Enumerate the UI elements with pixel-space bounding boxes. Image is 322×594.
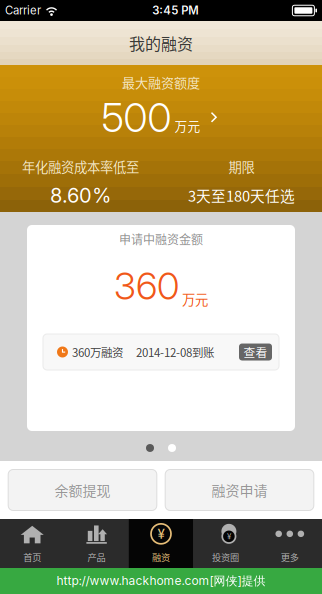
staticText: 2014-12-08到账 [136, 344, 214, 360]
staticText: 3天至180天任选 [188, 185, 295, 206]
button[interactable]: 查看 [239, 343, 272, 360]
staticText: 万元 [174, 116, 200, 135]
button[interactable]: 余额提现 [8, 469, 157, 510]
button[interactable]: 融资申请 [165, 469, 314, 510]
staticText: 余额提现 [54, 480, 110, 500]
staticText: 期限 [228, 157, 254, 176]
staticText: 融资 [152, 550, 170, 564]
staticText: 产品 [88, 550, 106, 564]
button[interactable]: ¥ [129, 519, 193, 568]
staticText: Carrier [5, 4, 41, 17]
staticText: 3:45 PM [152, 4, 198, 17]
staticText: 申请中融资金额 [119, 230, 203, 248]
staticText: 投资圈 [212, 550, 239, 564]
staticText: 最大融资额度 [122, 72, 200, 91]
staticText: 500 [101, 93, 171, 142]
staticText: 融资申请 [211, 480, 267, 500]
button[interactable]: 产品 [64, 519, 129, 568]
button[interactable]: 更多 [258, 519, 322, 568]
button[interactable]: ¥ [193, 519, 258, 568]
staticText: 更多 [281, 550, 299, 564]
staticText: ¥ [227, 531, 231, 541]
staticText: 首页 [23, 550, 41, 564]
staticText: 我的融资 [129, 31, 193, 55]
staticText: http://www.hackhome.com[网侠]提供 [56, 573, 265, 589]
staticText: 360 [114, 263, 179, 309]
staticText: 万元 [182, 289, 208, 309]
staticText: 8.60% [50, 183, 111, 208]
button[interactable]: 500 [101, 97, 220, 137]
staticText: 查看 [243, 343, 267, 360]
button[interactable]: 首页 [0, 519, 64, 568]
staticText: 360万融资 [72, 344, 123, 360]
staticText: 年化融资成本率低至 [22, 157, 139, 176]
staticText: ¥ [157, 526, 164, 542]
